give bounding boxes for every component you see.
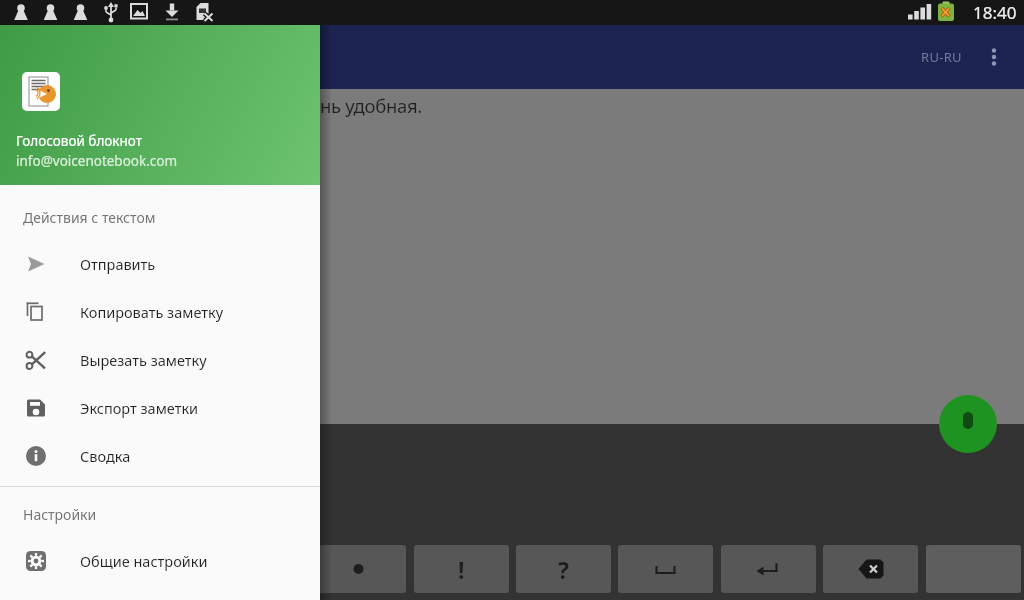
button[interactable]: ! (414, 545, 509, 593)
button[interactable]: Вырезать заметку (0, 336, 320, 384)
staticText: RU-RU (921, 48, 962, 66)
button[interactable] (823, 545, 918, 593)
staticText: ! (458, 554, 465, 585)
staticText: ? (558, 554, 569, 585)
button[interactable]: RU-RU (915, 48, 968, 66)
button[interactable] (311, 545, 406, 593)
staticText: info@voicenotebook.com (16, 152, 178, 170)
button[interactable]: Сводка (0, 432, 320, 480)
button[interactable]: Экспорт заметки (0, 384, 320, 432)
staticText: Настройки (23, 505, 97, 524)
staticText: Копировать заметку (80, 302, 224, 322)
button[interactable]: ? (516, 545, 611, 593)
button[interactable]: Общие настройки (0, 537, 320, 585)
staticText: Действия с текстом (23, 208, 156, 227)
button[interactable] (984, 37, 1004, 77)
staticText: Сводка (80, 446, 131, 466)
button[interactable] (721, 545, 816, 593)
staticText: Общие настройки (80, 551, 208, 571)
staticText: Экспорт заметки (80, 398, 199, 418)
staticText: Голосовой блокнот (16, 132, 142, 150)
button[interactable] (618, 545, 713, 593)
button[interactable]: Копировать заметку (0, 288, 320, 336)
button[interactable]: Отправить (0, 240, 320, 288)
staticText: Отправить (80, 254, 156, 274)
staticText: Вырезать заметку (80, 350, 207, 370)
staticText: 18:40 (973, 1, 1017, 24)
button[interactable] (939, 395, 997, 453)
staticText: нь удобная. (320, 93, 422, 118)
